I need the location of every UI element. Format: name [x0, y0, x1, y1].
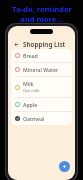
staticText: Oat milk [23, 88, 40, 94]
staticText: Apple [23, 101, 38, 108]
button[interactable]: Add item [59, 161, 70, 172]
button[interactable]: Milk [11, 77, 72, 97]
button[interactable]: Bread [11, 49, 72, 62]
staticText: Bread [23, 52, 38, 59]
button[interactable]: Back [13, 41, 20, 48]
button[interactable]: Oatmeal [11, 112, 72, 125]
staticText: Shopping List [23, 40, 66, 49]
button[interactable]: Back [8, 39, 75, 50]
button[interactable]: Mineral Water [11, 63, 72, 76]
button[interactable]: Apple [11, 98, 72, 111]
staticText: Milk [23, 80, 34, 87]
staticText: To-do, reminder [12, 4, 72, 14]
staticText: Oatmeal [23, 115, 45, 122]
staticText: and more... [20, 14, 63, 24]
staticText: Mineral Water [23, 66, 59, 73]
